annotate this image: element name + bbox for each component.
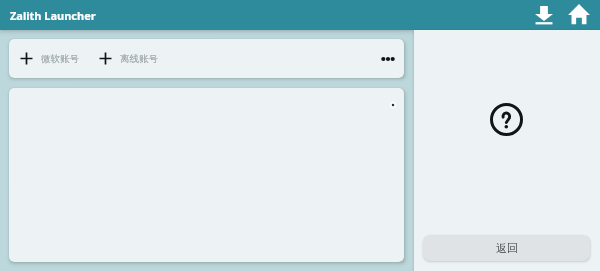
button[interactable]: More options [376,47,400,71]
button[interactable]: Download [531,2,557,28]
staticText: 微软账号 [41,53,79,65]
staticText: Zalith Launcher [10,8,96,23]
staticText: 返回 [496,241,518,255]
button[interactable]: Home [566,2,592,28]
button[interactable]: 微软账号 [17,49,82,68]
button[interactable]: 返回 [423,235,590,261]
button[interactable]: 离线账号 [96,49,161,68]
staticText: 离线账号 [120,53,158,65]
